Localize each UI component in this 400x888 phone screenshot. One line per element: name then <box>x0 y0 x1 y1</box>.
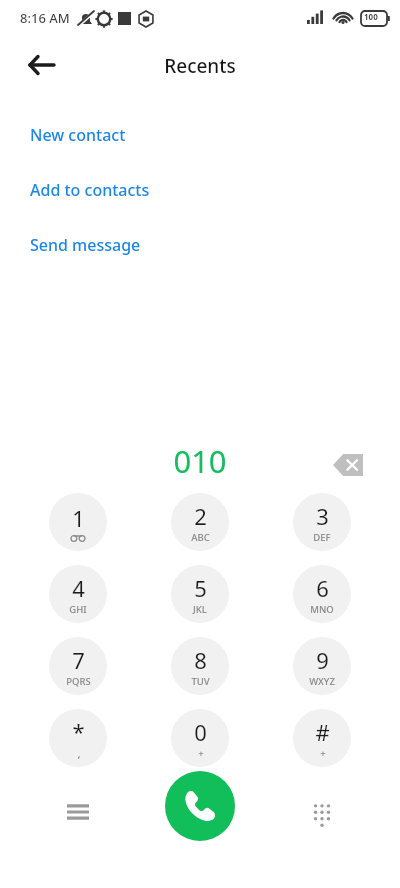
staticText: 8 <box>194 645 207 675</box>
staticText: ABC <box>191 531 210 544</box>
staticText: Recents <box>0 53 400 79</box>
staticText: DEF <box>313 531 331 544</box>
staticText: 2 <box>194 501 207 531</box>
staticText: PQRS <box>66 675 91 688</box>
button[interactable]: Send message <box>0 217 400 272</box>
staticText: 100 <box>364 11 378 22</box>
button[interactable]: More options <box>54 788 102 836</box>
button[interactable]: Call <box>165 771 235 841</box>
button[interactable]: * <box>49 709 107 767</box>
staticText: 9 <box>316 645 329 675</box>
button[interactable]: Keypad <box>298 788 346 836</box>
button[interactable]: # <box>293 709 351 767</box>
staticText: Add to contacts <box>30 179 150 201</box>
button[interactable]: 5 <box>171 565 229 623</box>
button[interactable]: 2 <box>171 493 229 551</box>
staticText: 3 <box>316 501 329 531</box>
button[interactable]: 4 <box>49 565 107 623</box>
button[interactable]: Back <box>18 41 66 89</box>
button[interactable]: 9 <box>293 637 351 695</box>
staticText: 6 <box>316 573 329 603</box>
staticText: 0 <box>194 717 207 747</box>
staticText: Send message <box>30 234 141 256</box>
staticText: New contact <box>30 124 126 146</box>
button[interactable]: 6 <box>293 565 351 623</box>
staticText: MNO <box>310 603 334 616</box>
staticText: GHI <box>69 603 87 616</box>
staticText: 7 <box>72 645 85 675</box>
button[interactable]: 1 <box>49 493 107 551</box>
staticText: 8:16 AM <box>20 9 70 27</box>
button[interactable]: 7 <box>49 637 107 695</box>
staticText: * <box>72 716 85 746</box>
staticText: # <box>315 717 330 747</box>
staticText: 1 <box>72 503 85 533</box>
button[interactable]: 3 <box>293 493 351 551</box>
staticText: + <box>198 747 204 760</box>
staticText: 5 <box>194 573 207 603</box>
button[interactable]: 8 <box>171 637 229 695</box>
staticText: + <box>320 747 326 760</box>
button[interactable]: 0 <box>171 709 229 767</box>
staticText: JKL <box>193 603 207 616</box>
button[interactable]: Add to contacts <box>0 162 400 217</box>
button[interactable]: New contact <box>0 107 400 162</box>
staticText: WXYZ <box>309 675 335 688</box>
button[interactable]: Backspace <box>324 441 372 489</box>
staticText: , <box>77 746 81 761</box>
staticText: 010 <box>0 440 400 482</box>
staticText: TUV <box>191 675 210 688</box>
staticText: 4 <box>72 573 85 603</box>
